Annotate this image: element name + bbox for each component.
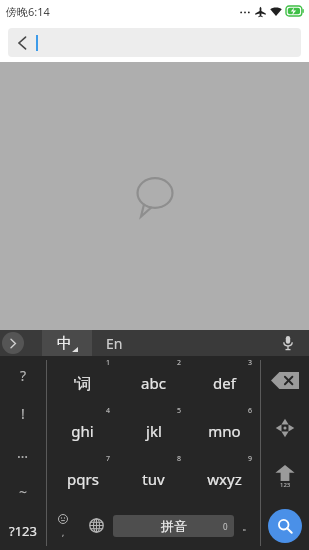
button[interactable]: 拼音 — [113, 515, 234, 537]
button[interactable]: Emoji — [47, 501, 79, 550]
staticText: 。 — [242, 519, 253, 533]
staticText: 4 — [106, 406, 111, 416]
staticText: 0 — [223, 521, 228, 532]
button[interactable]: 3 — [189, 356, 260, 404]
button[interactable]: … — [0, 433, 46, 472]
staticText: tuv — [142, 469, 165, 489]
button[interactable]: 中 — [42, 330, 92, 356]
staticText: 9 — [248, 454, 253, 464]
staticText: 5 — [177, 406, 182, 416]
staticText: mno — [208, 421, 241, 441]
staticText: 123 — [280, 481, 291, 489]
button[interactable]: Search — [261, 501, 309, 550]
staticText: ?123 — [9, 522, 37, 540]
staticText: 6 — [248, 406, 253, 416]
button[interactable]: Shift — [261, 452, 309, 501]
button[interactable]: 8 — [118, 452, 189, 501]
staticText: ! — [21, 404, 25, 423]
button[interactable]: Switch language — [79, 501, 113, 550]
button[interactable]: Cursor keys — [261, 404, 309, 452]
staticText: 8 — [177, 454, 182, 464]
button[interactable]: 。 — [234, 501, 260, 550]
button[interactable]: 7 — [47, 452, 118, 501]
button[interactable]: Back — [8, 28, 301, 57]
staticText: , — [62, 527, 65, 538]
button[interactable]: ?123 — [0, 511, 46, 550]
staticText: 中 — [57, 334, 72, 353]
button[interactable]: En — [92, 330, 267, 356]
staticText: 3 — [248, 358, 253, 368]
button[interactable]: 2 — [118, 356, 189, 404]
staticText: 7 — [106, 454, 111, 464]
staticText: wxyz — [207, 469, 242, 489]
button[interactable]: Expand — [0, 330, 42, 356]
button[interactable]: Voice input — [267, 330, 309, 356]
button[interactable]: 9 — [189, 452, 260, 501]
staticText: def — [213, 373, 236, 393]
staticText: ~ — [19, 482, 28, 501]
staticText: '词 — [73, 373, 92, 393]
button[interactable]: 5 — [118, 404, 189, 452]
staticText: 傍晚6:14 — [6, 4, 50, 19]
staticText: 拼音 — [161, 518, 187, 534]
button[interactable]: Backspace — [261, 356, 309, 404]
button[interactable]: 1 — [47, 356, 118, 404]
staticText: ? — [20, 366, 27, 385]
staticText: … — [17, 443, 29, 462]
button[interactable]: ! — [0, 394, 46, 433]
staticText: ghi — [71, 421, 94, 441]
staticText: pqrs — [67, 469, 99, 489]
staticText: En — [106, 334, 123, 353]
staticText: 2 — [177, 358, 182, 368]
staticText: abc — [141, 373, 166, 393]
button[interactable]: Back — [8, 29, 36, 57]
button[interactable]: 6 — [189, 404, 260, 452]
staticText: 1 — [106, 358, 111, 368]
button[interactable]: 4 — [47, 404, 118, 452]
staticText: jkl — [146, 421, 162, 441]
button[interactable]: ~ — [0, 472, 46, 511]
button[interactable]: ? — [0, 356, 46, 394]
